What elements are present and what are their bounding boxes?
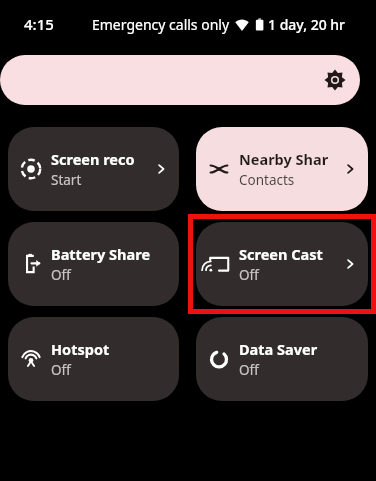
staticText: Emergency calls only [92,15,230,34]
staticText: Off [51,361,71,379]
button[interactable]: Screen Cast [196,222,368,306]
staticText: Screen reco [51,149,135,169]
staticText: Off [239,266,259,284]
staticText: Data Saver [239,339,318,359]
staticText: Contacts [239,171,295,189]
button[interactable]: Nearby Shar [196,127,368,211]
button[interactable]: Brightness [0,55,360,105]
button[interactable]: Screen reco [8,127,179,211]
staticText: Hotspot [51,339,110,359]
button[interactable]: Battery Share [8,222,179,306]
staticText: Screen Cast [239,244,323,264]
staticText: 4:15 [24,14,54,34]
staticText: Start [51,171,82,189]
button[interactable]: Data Saver [196,317,368,401]
staticText: Off [51,266,71,284]
button[interactable]: Hotspot [8,317,179,401]
staticText: Battery Share [51,244,151,264]
staticText: 1 day, 20 hr [268,15,345,34]
staticText: Off [239,361,259,379]
staticText: Nearby Shar [239,149,329,169]
